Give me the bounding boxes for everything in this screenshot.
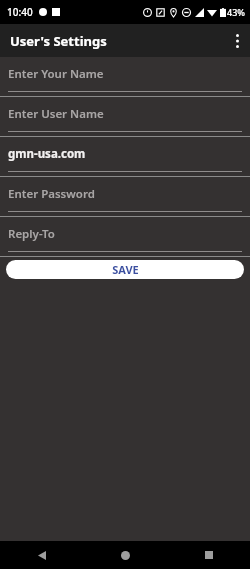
staticText: Enter Password <box>8 186 95 202</box>
staticText: Enter Your Name <box>8 66 104 82</box>
staticText: 10:40 <box>7 5 33 19</box>
staticText: Enter User Name <box>8 106 104 122</box>
button[interactable]: Enter User Name <box>0 97 250 136</box>
button[interactable]: Reply-To <box>0 217 250 256</box>
button[interactable]: Home <box>84 541 167 569</box>
button[interactable]: Back <box>0 541 84 569</box>
staticText: SAVE <box>112 262 139 277</box>
staticText: User's Settings <box>10 32 107 50</box>
button[interactable]: Recent apps <box>167 541 250 569</box>
staticText: 43% <box>227 6 245 18</box>
button[interactable]: SAVE <box>6 260 244 279</box>
button[interactable]: More options <box>224 24 250 57</box>
button[interactable]: gmn-usa.com <box>0 137 250 176</box>
button[interactable]: Enter Your Name <box>0 57 250 96</box>
button[interactable]: Enter Password <box>0 177 250 216</box>
staticText: Reply-To <box>8 226 55 242</box>
staticText: gmn-usa.com <box>8 146 86 162</box>
